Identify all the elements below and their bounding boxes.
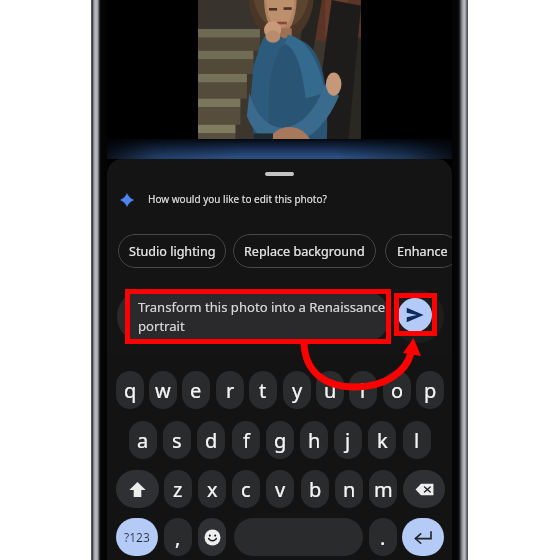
staticText: s bbox=[172, 427, 182, 454]
staticText: e bbox=[190, 377, 202, 404]
button[interactable]: Space bbox=[234, 518, 363, 556]
staticText: v bbox=[275, 476, 286, 503]
button[interactable]: y bbox=[283, 371, 311, 409]
staticText: b bbox=[309, 476, 322, 503]
staticText: Transform this photo into a Renaissance … bbox=[138, 298, 390, 335]
button[interactable]: s bbox=[163, 421, 191, 459]
staticText: y bbox=[292, 377, 303, 404]
staticText: ?123 bbox=[124, 529, 150, 545]
staticText: . bbox=[380, 524, 386, 551]
button[interactable]: Transform this photo into a Renaissance … bbox=[117, 291, 390, 342]
button[interactable]: Replace background bbox=[233, 234, 376, 268]
button[interactable]: Emoji bbox=[198, 518, 226, 556]
button[interactable]: n bbox=[335, 470, 363, 508]
button[interactable]: g bbox=[266, 421, 294, 459]
staticText: a bbox=[137, 427, 149, 454]
staticText: z bbox=[173, 476, 183, 503]
staticText: p bbox=[424, 377, 437, 404]
staticText: c bbox=[241, 476, 251, 503]
button[interactable]: r bbox=[216, 371, 244, 409]
button[interactable]: z bbox=[164, 470, 192, 508]
staticText: m bbox=[374, 476, 393, 503]
staticText: How would you like to edit this photo? bbox=[148, 192, 327, 206]
button[interactable]: a bbox=[129, 421, 157, 459]
button[interactable]: , bbox=[164, 518, 192, 556]
button[interactable]: t bbox=[249, 371, 277, 409]
staticText: g bbox=[274, 427, 287, 454]
button[interactable]: e bbox=[182, 371, 210, 409]
staticText: Enhance bbox=[397, 243, 448, 260]
button[interactable]: i bbox=[349, 371, 377, 409]
staticText: r bbox=[226, 377, 235, 404]
button[interactable]: w bbox=[149, 371, 177, 409]
button[interactable]: q bbox=[116, 371, 144, 409]
staticText: h bbox=[308, 427, 321, 454]
button[interactable]: x bbox=[198, 470, 226, 508]
button[interactable]: p bbox=[416, 371, 444, 409]
button[interactable]: m bbox=[369, 470, 397, 508]
button[interactable]: . bbox=[369, 518, 397, 556]
button[interactable]: Studio lighting bbox=[118, 234, 226, 268]
button[interactable]: Send bbox=[398, 298, 432, 332]
staticText: u bbox=[324, 377, 337, 404]
staticText: f bbox=[243, 427, 250, 454]
staticText: t bbox=[259, 377, 267, 404]
button[interactable]: Backspace bbox=[403, 470, 445, 508]
button[interactable]: h bbox=[300, 421, 328, 459]
button[interactable]: ?123 bbox=[116, 518, 158, 556]
button[interactable]: l bbox=[403, 421, 431, 459]
staticText: Studio lighting bbox=[129, 243, 216, 260]
staticText: Replace background bbox=[244, 243, 365, 260]
staticText: i bbox=[360, 377, 366, 404]
button[interactable]: j bbox=[334, 421, 362, 459]
staticText: o bbox=[391, 377, 404, 404]
button[interactable]: f bbox=[232, 421, 260, 459]
button[interactable]: b bbox=[301, 470, 329, 508]
staticText: w bbox=[155, 377, 171, 404]
button[interactable]: Shift bbox=[116, 470, 159, 508]
button[interactable]: d bbox=[197, 421, 225, 459]
button[interactable]: o bbox=[383, 371, 411, 409]
button[interactable]: Enhance bbox=[385, 234, 452, 268]
staticText: n bbox=[343, 476, 356, 503]
staticText: l bbox=[414, 427, 420, 454]
staticText: x bbox=[207, 476, 218, 503]
button[interactable]: c bbox=[232, 470, 260, 508]
button[interactable]: v bbox=[266, 470, 294, 508]
staticText: k bbox=[377, 427, 388, 454]
button[interactable]: k bbox=[368, 421, 396, 459]
button[interactable]: u bbox=[316, 371, 344, 409]
staticText: q bbox=[124, 377, 137, 404]
staticText: d bbox=[205, 427, 218, 454]
staticText: j bbox=[345, 427, 351, 454]
button[interactable]: Enter bbox=[402, 518, 444, 556]
staticText: , bbox=[175, 524, 181, 551]
